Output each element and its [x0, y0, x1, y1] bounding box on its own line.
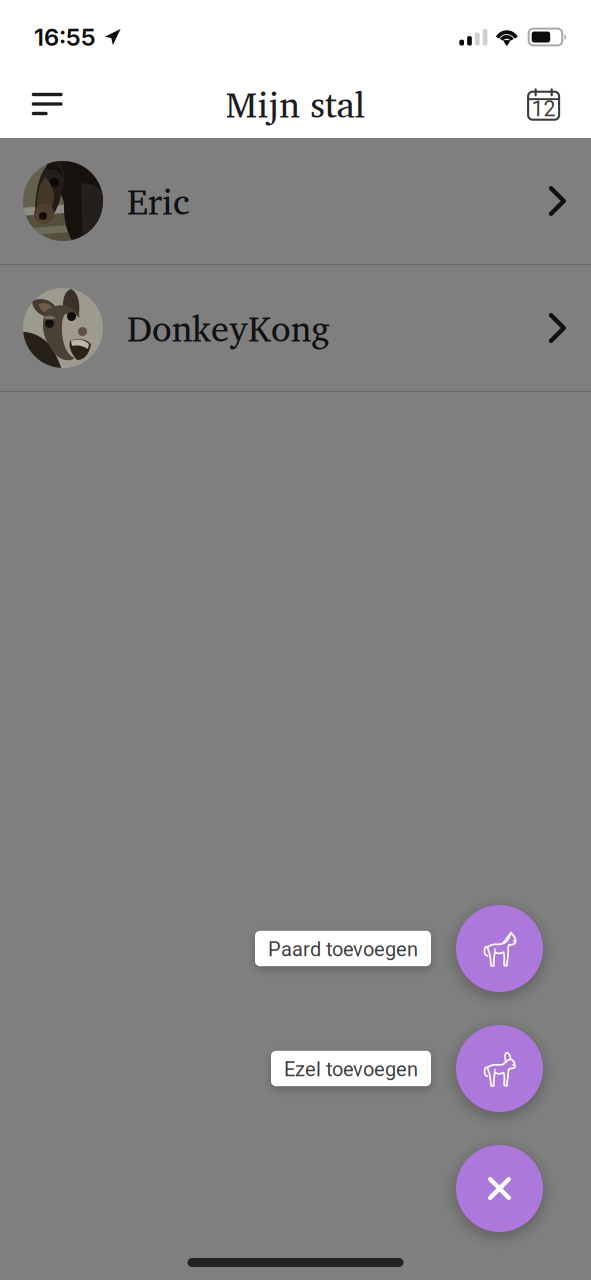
staticText: Mijn stal: [225, 75, 365, 133]
button[interactable]: Eric: [0, 138, 591, 264]
staticText: Paard toevoegen: [268, 938, 418, 961]
staticText: Eric: [127, 172, 190, 230]
button[interactable]: Calendar: [512, 78, 577, 130]
staticText: DonkeyKong: [127, 299, 330, 357]
staticText: 16:55: [34, 22, 96, 51]
button[interactable]: Close menu: [456, 1145, 543, 1232]
staticText: 12: [532, 96, 556, 121]
button[interactable]: DonkeyKong: [0, 265, 591, 391]
staticText: Ezel toevoegen: [284, 1058, 418, 1081]
button[interactable]: Menu: [14, 78, 79, 129]
button[interactable]: Ezel toevoegen: [271, 1025, 543, 1112]
button[interactable]: Paard toevoegen: [255, 905, 543, 992]
